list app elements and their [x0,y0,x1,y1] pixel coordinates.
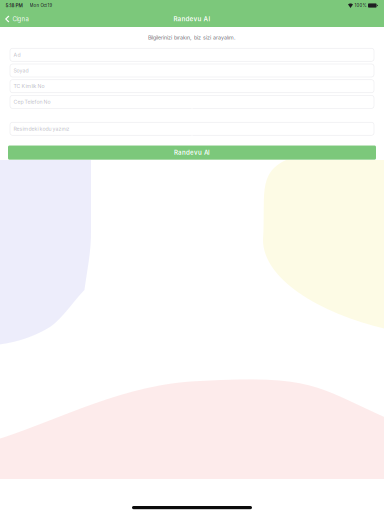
button[interactable]: Randevu Al [8,145,376,160]
button[interactable]: Resimdeki kodu yazınız [10,122,374,135]
staticText: 5:18 PM [5,3,22,8]
button[interactable]: TC Kimlik No [10,80,374,93]
button[interactable]: Soyad [10,64,374,77]
staticText: 100% [354,3,366,8]
staticText: TC Kimlik No [13,83,44,89]
staticText: Bilgilerinizi bırakın, biz sizi arayalım… [148,34,236,41]
staticText: Mon Oct 19 [29,3,52,8]
staticText: Randevu Al [173,15,210,23]
staticText: Soyad [13,67,28,74]
button[interactable]: Ad [10,48,374,61]
staticText: Resimdeki kodu yazınız [13,126,69,132]
button[interactable]: Cigna [0,11,34,27]
staticText: Cigna [12,15,28,23]
button[interactable]: Cep Telefon No [10,95,374,108]
staticText: Ad [13,52,20,58]
staticText: Randevu Al [174,149,210,156]
staticText: Cep Telefon No [13,99,50,105]
